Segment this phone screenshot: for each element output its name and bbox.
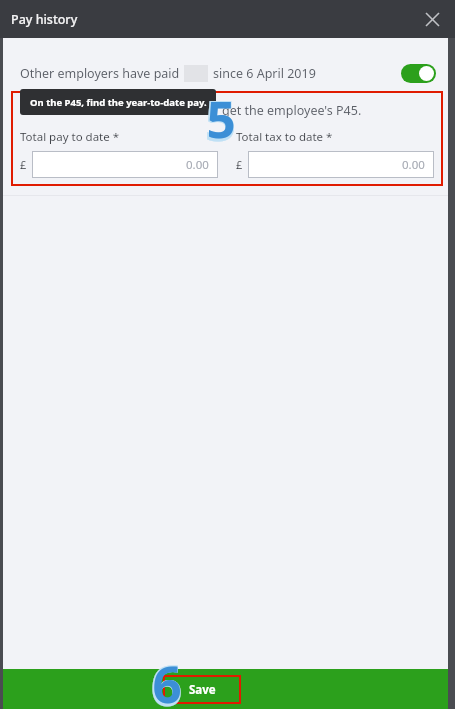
staticText: Pay history [11,11,78,28]
button[interactable]: Close [417,4,447,34]
button[interactable]: 0.00 [248,151,434,178]
staticText: 6 [150,646,183,709]
button[interactable]: Toggle other employers paid [401,64,436,83]
staticText: £ [236,157,243,172]
staticText: get the employee's P45. [222,102,362,119]
staticText: 6 [152,648,182,709]
staticText: Other employers have paid [20,65,180,82]
staticText: Save [189,682,216,698]
staticText: 5 [206,83,236,152]
staticText: since 6 April 2019 [213,65,316,82]
staticText: On the P45, find the year-to-date pay. [30,96,207,109]
staticText: Total pay to date * [20,129,120,145]
staticText: 5 [204,81,237,157]
button[interactable]: 0.00 [32,151,218,178]
staticText: Total tax to date * [236,129,333,145]
staticText: 0.00 [402,157,425,173]
staticText: 0.00 [186,157,209,173]
button[interactable]: Save [163,675,241,704]
staticText: £ [20,157,27,172]
